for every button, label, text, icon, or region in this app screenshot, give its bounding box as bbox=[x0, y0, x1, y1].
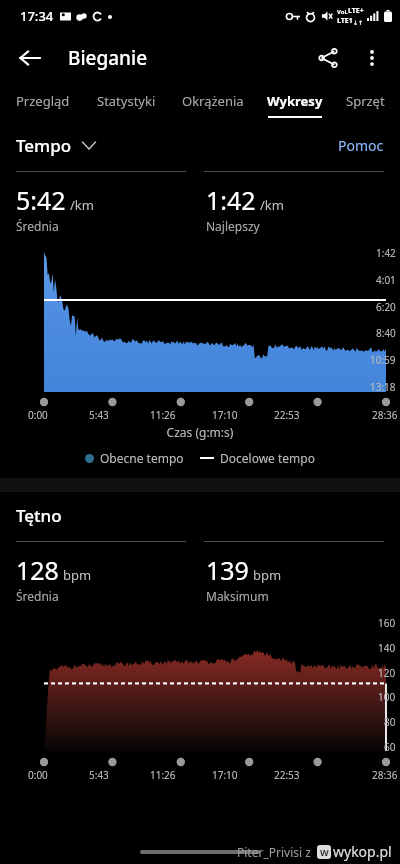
staticText: W bbox=[320, 846, 329, 858]
staticText: Statystyki bbox=[97, 92, 156, 110]
staticText: 17:10 bbox=[212, 408, 238, 422]
button[interactable]: Tempo bbox=[16, 134, 96, 157]
staticText: 0:00 bbox=[28, 768, 48, 782]
staticText: 10:59 bbox=[370, 353, 396, 367]
staticText: 17:34 bbox=[20, 7, 54, 25]
button[interactable]: Back bbox=[8, 36, 52, 80]
staticText: Pomoc bbox=[338, 136, 384, 155]
staticText: 5:42 bbox=[16, 183, 66, 217]
staticText: 17:10 bbox=[212, 768, 238, 782]
staticText: 140 bbox=[378, 641, 396, 655]
staticText: Sprzęt bbox=[346, 92, 385, 110]
staticText: 4:01 bbox=[376, 273, 396, 287]
button[interactable]: Okrążenia bbox=[170, 84, 256, 126]
staticText: Piter_Privisi z bbox=[237, 844, 311, 860]
staticText: wykop.pl bbox=[333, 842, 392, 861]
staticText: /km bbox=[70, 196, 94, 214]
staticText: Tętno bbox=[16, 504, 62, 527]
staticText: 60 bbox=[384, 740, 396, 754]
button[interactable]: Pomoc bbox=[338, 136, 384, 155]
staticText: Najlepszy bbox=[206, 218, 260, 234]
staticText: 8:40 bbox=[376, 326, 396, 340]
staticText: Tempo bbox=[16, 134, 72, 157]
staticText: Czas (g:m:s) bbox=[0, 424, 400, 440]
staticText: LTE1 bbox=[337, 16, 353, 26]
staticText: Bieganie bbox=[68, 45, 148, 71]
staticText: 28:36 bbox=[372, 768, 398, 782]
staticText: LTE+ bbox=[348, 6, 364, 16]
staticText: 139 bbox=[206, 553, 249, 587]
staticText: 13:18 bbox=[370, 380, 396, 394]
staticText: 1:42 bbox=[206, 183, 256, 217]
staticText: 22:53 bbox=[274, 768, 300, 782]
staticText: 120 bbox=[378, 666, 396, 680]
staticText: Docelowe tempo bbox=[220, 450, 315, 466]
button[interactable]: Wykresy bbox=[256, 84, 334, 126]
staticText: 100 bbox=[378, 690, 396, 704]
button[interactable]: Statystyki bbox=[82, 84, 170, 126]
button[interactable]: Przegląd bbox=[4, 84, 82, 126]
staticText: Okrążenia bbox=[182, 92, 244, 110]
staticText: Wykresy bbox=[267, 92, 323, 110]
button[interactable]: More options bbox=[350, 36, 394, 80]
staticText: 22:53 bbox=[274, 408, 300, 422]
staticText: bpm bbox=[253, 566, 282, 584]
staticText: 1:42 bbox=[376, 246, 396, 260]
staticText: 6:20 bbox=[376, 300, 396, 314]
staticText: 128 bbox=[16, 553, 59, 587]
staticText: Przegląd bbox=[16, 92, 70, 110]
staticText: VoL bbox=[337, 8, 348, 16]
staticText: Średnia bbox=[16, 218, 59, 234]
staticText: 160 bbox=[378, 616, 396, 630]
staticText: 5:43 bbox=[89, 408, 109, 422]
staticText: Obecne tempo bbox=[100, 450, 184, 466]
staticText: 5:43 bbox=[89, 768, 109, 782]
button[interactable]: Share bbox=[306, 36, 350, 80]
staticText: 11:26 bbox=[150, 768, 176, 782]
button[interactable]: Sprzęt bbox=[334, 84, 396, 126]
staticText: ↓↑ bbox=[353, 19, 364, 26]
staticText: Średnia bbox=[16, 588, 59, 604]
staticText: bpm bbox=[63, 566, 92, 584]
staticText: 11:26 bbox=[150, 408, 176, 422]
staticText: 28:36 bbox=[372, 408, 398, 422]
staticText: Maksimum bbox=[206, 588, 269, 604]
staticText: 0:00 bbox=[28, 408, 48, 422]
staticText: 80 bbox=[384, 715, 396, 729]
staticText: /km bbox=[260, 196, 284, 214]
